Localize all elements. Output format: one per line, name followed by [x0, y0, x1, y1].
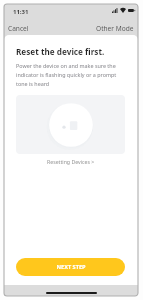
- staticText: Resetting Devices >: [47, 158, 95, 165]
- button[interactable]: Resetting Devices >: [16, 158, 125, 165]
- staticText: NEXT STEP: [56, 263, 86, 271]
- staticText: 11:31: [13, 8, 29, 16]
- staticText: Other Mode: [96, 24, 134, 32]
- staticText: Cancel: [8, 24, 29, 32]
- button[interactable]: Other Mode: [92, 21, 138, 35]
- staticText: Power the device on and make sure the in…: [16, 62, 125, 88]
- staticText: Reset the device first.: [16, 46, 105, 57]
- button[interactable]: Cancel: [4, 21, 33, 35]
- button[interactable]: NEXT STEP: [16, 258, 125, 276]
